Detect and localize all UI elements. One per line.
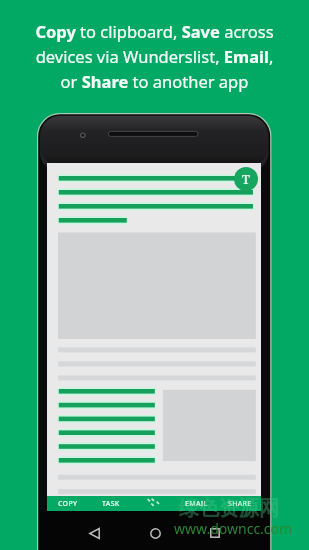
staticText: EMAIL [185, 499, 208, 509]
button[interactable]: SHARE [218, 496, 261, 511]
staticText: T [242, 171, 250, 187]
staticText: TASK [102, 499, 120, 509]
button[interactable]: Recent apps [202, 520, 228, 546]
button[interactable]: Home [142, 520, 168, 546]
button[interactable]: EMAIL [175, 496, 218, 511]
button[interactable]: Text tool [234, 167, 258, 191]
staticText: SHARE [228, 499, 252, 509]
button[interactable]: COPY [47, 496, 89, 511]
staticText: www.downcc.com [174, 519, 293, 538]
button[interactable]: TASK [89, 496, 132, 511]
button[interactable]: Loading [132, 496, 175, 511]
staticText: COPY [58, 499, 78, 509]
button[interactable]: Back [81, 520, 107, 546]
staticText: 绿色资源网 [179, 496, 279, 521]
staticText: Copy to clipboard, Save across devices v… [35, 20, 274, 93]
